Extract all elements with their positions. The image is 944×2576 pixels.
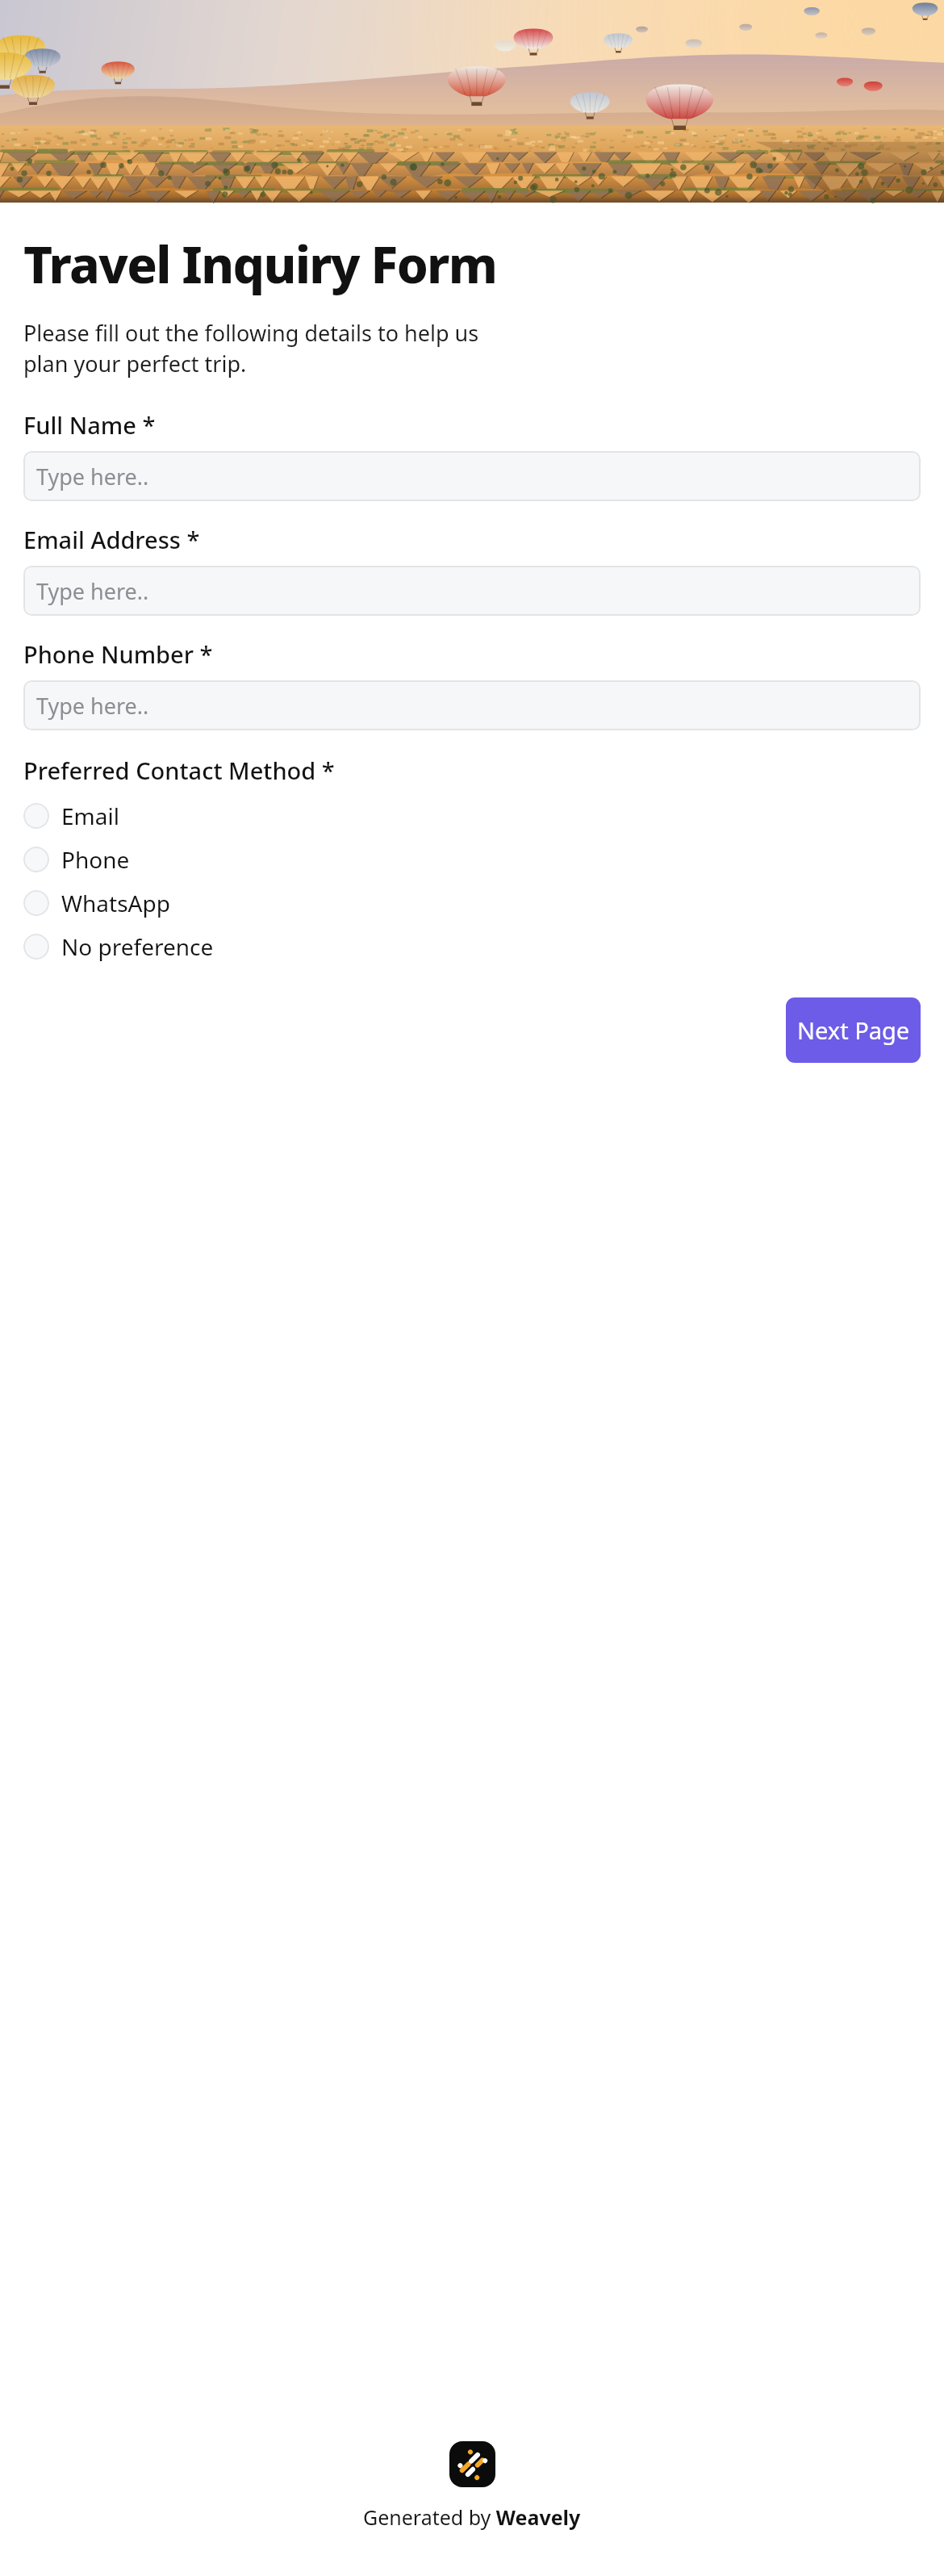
staticText: Next Page: [797, 1014, 910, 1046]
staticText: WhatsApp: [61, 888, 170, 918]
button[interactable]: No preference: [23, 925, 921, 968]
button[interactable]: Next Page: [786, 997, 921, 1063]
button[interactable]: Type here..: [23, 451, 921, 501]
button[interactable]: Phone: [23, 838, 921, 881]
staticText: Generated by Weavely: [363, 2503, 581, 2531]
staticText: Type here..: [36, 691, 149, 721]
button[interactable]: Weavely logo: [449, 2441, 495, 2487]
staticText: Phone: [61, 844, 130, 875]
staticText: Email Address *: [23, 524, 200, 555]
staticText: No preference: [61, 931, 214, 962]
staticText: Email: [61, 801, 119, 831]
staticText: Phone Number *: [23, 638, 213, 670]
staticText: Full Name *: [23, 409, 156, 441]
staticText: Travel Inquiry Form: [23, 230, 497, 298]
staticText: Type here..: [36, 462, 149, 491]
staticText: Type here..: [36, 576, 149, 606]
staticText: Preferred Contact Method *: [23, 755, 335, 786]
button[interactable]: Email: [23, 794, 921, 838]
staticText: Please fill out the following details to…: [23, 318, 479, 378]
button[interactable]: WhatsApp: [23, 881, 921, 925]
button[interactable]: Type here..: [23, 566, 921, 616]
button[interactable]: Type here..: [23, 680, 921, 730]
